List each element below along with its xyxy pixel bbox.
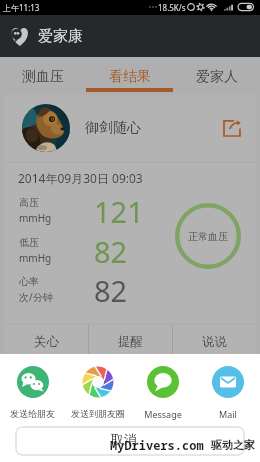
staticText: Message bbox=[144, 408, 182, 420]
staticText: 关心 bbox=[34, 334, 59, 350]
staticText: 御剑随心 bbox=[85, 119, 141, 137]
staticText: 正常血压 bbox=[188, 230, 228, 243]
button[interactable]: 说说 bbox=[173, 325, 256, 355]
button[interactable]: 爱家人 bbox=[173, 57, 260, 92]
button[interactable]: 发送给朋友 bbox=[0, 366, 65, 419]
staticText: 低压 bbox=[19, 236, 39, 249]
staticText: 说说 bbox=[202, 334, 227, 350]
staticText: 发送给朋友 bbox=[10, 408, 55, 419]
staticText: 发送到朋友圈 bbox=[71, 408, 125, 419]
staticText: 提醒 bbox=[118, 334, 143, 350]
button[interactable]: 发送到朋友圈 bbox=[65, 366, 130, 419]
button[interactable]: 取消 bbox=[15, 426, 245, 456]
staticText: 高压 bbox=[19, 196, 39, 209]
staticText: Mail bbox=[219, 408, 237, 420]
staticText: 取消 bbox=[111, 431, 137, 447]
staticText: 18.5K/s bbox=[158, 2, 186, 13]
button[interactable]: Mail bbox=[195, 366, 260, 420]
staticText: 82 bbox=[94, 271, 128, 307]
staticText: 心率 bbox=[19, 275, 39, 288]
staticText: 看结果 bbox=[109, 68, 151, 86]
staticText: 2014年09月30日 09:03 bbox=[18, 170, 143, 186]
staticText: 上午11:13 bbox=[3, 2, 40, 13]
staticText: 次/分钟 bbox=[19, 290, 53, 304]
staticText: mmHg bbox=[19, 251, 52, 265]
staticText: 82 bbox=[94, 232, 128, 268]
button[interactable]: 测血压 bbox=[0, 57, 86, 92]
staticText: 121 bbox=[94, 192, 144, 228]
button[interactable]: 提醒 bbox=[89, 325, 172, 355]
staticText: 驱动之家 bbox=[211, 438, 255, 452]
staticText: mmHg bbox=[19, 211, 52, 225]
button[interactable]: Message bbox=[130, 366, 195, 420]
staticText: 爱家康 bbox=[38, 27, 83, 46]
staticText: 测血压 bbox=[22, 68, 64, 86]
button[interactable]: 看结果 bbox=[86, 57, 173, 92]
staticText: 爱家人 bbox=[196, 68, 238, 86]
button[interactable]: Share bbox=[221, 117, 243, 139]
staticText: MyDrivers.com bbox=[110, 437, 204, 453]
button[interactable]: 关心 bbox=[4, 325, 88, 355]
